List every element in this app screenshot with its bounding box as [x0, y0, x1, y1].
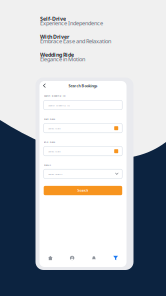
staticText: Experience Independence [40, 19, 103, 27]
button[interactable]: Home [39, 255, 61, 261]
staticText: Embrace Ease and Relaxation [40, 37, 111, 45]
button[interactable]: Notifications [83, 255, 105, 261]
staticText: Search Bookings [68, 83, 97, 88]
staticText: End Date [44, 140, 55, 144]
staticText: Search Booking ID [48, 103, 70, 107]
button[interactable]: Search Booking ID [44, 100, 122, 110]
button[interactable]: Back [41, 82, 47, 89]
staticText: Self-Drive [40, 15, 66, 22]
button[interactable]: Search [44, 186, 122, 195]
button[interactable]: Profile [61, 255, 83, 261]
staticText: Start Date [44, 117, 55, 120]
staticText: Select date [48, 150, 60, 153]
button[interactable]: Filter [105, 255, 127, 261]
staticText: Elegance in Motion [40, 55, 85, 63]
staticText: Search [77, 189, 88, 193]
button[interactable]: Select date [44, 123, 122, 133]
staticText: With Driver [40, 33, 69, 40]
button[interactable]: Select date [44, 146, 122, 156]
staticText: Search Booking ID [44, 94, 66, 97]
staticText: Status [44, 163, 51, 167]
staticText: Wedding Ride [40, 51, 74, 58]
button[interactable]: Select Status [44, 169, 122, 178]
staticText: Select date [48, 127, 60, 130]
staticText: Select Status [48, 172, 62, 176]
